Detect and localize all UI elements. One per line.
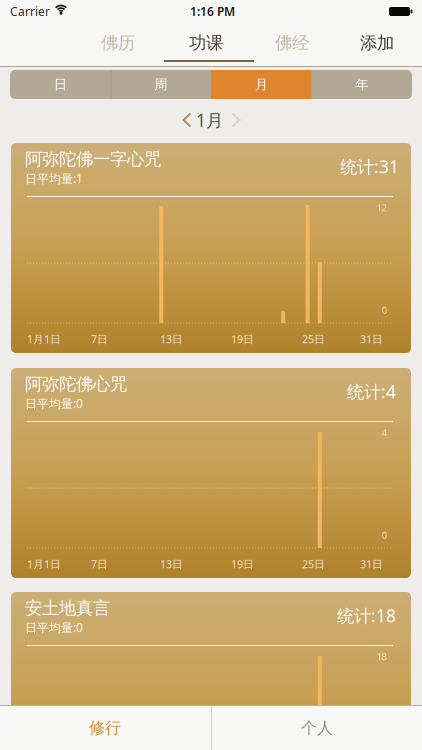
button[interactable]: 阿弥陀佛心咒 xyxy=(11,368,411,578)
staticText: 1月1日 xyxy=(27,332,61,346)
staticText: 19日 xyxy=(231,332,254,346)
button[interactable]: 修行 xyxy=(0,706,210,750)
staticText: 功课 xyxy=(189,32,223,54)
staticText: 安土地真言 xyxy=(25,597,110,619)
staticText: 阿弥陀佛心咒 xyxy=(25,373,127,395)
staticText: 18 xyxy=(376,650,386,663)
staticText: 13日 xyxy=(160,332,183,346)
button[interactable]: 阿弥陀佛一字心咒 xyxy=(11,143,411,353)
staticText: 个人 xyxy=(301,718,333,738)
button[interactable]: Previous month xyxy=(175,105,198,134)
staticText: 修行 xyxy=(89,718,121,738)
button[interactable]: Next month xyxy=(224,105,247,134)
staticText: 7日 xyxy=(91,557,108,571)
button[interactable]: 佛经 xyxy=(248,25,336,61)
staticText: 0 xyxy=(382,304,387,316)
button[interactable]: 添加 xyxy=(333,25,421,61)
staticText: 日平均量:0 xyxy=(25,395,83,411)
staticText: 31日 xyxy=(360,332,383,346)
staticText: 佛经 xyxy=(275,32,309,54)
button[interactable]: 周 xyxy=(110,70,211,99)
staticText: 25日 xyxy=(302,332,325,346)
button[interactable]: 佛历 xyxy=(74,25,162,61)
staticText: 阿弥陀佛一字心咒 xyxy=(25,148,161,170)
staticText: 7日 xyxy=(91,332,108,346)
staticText: 25日 xyxy=(302,557,325,571)
button[interactable]: 月 xyxy=(211,70,311,99)
staticText: Carrier xyxy=(10,3,50,19)
button[interactable]: 年 xyxy=(311,70,412,99)
staticText: 统计:31 xyxy=(340,155,399,178)
staticText: 日 xyxy=(54,76,67,93)
staticText: 1月 xyxy=(196,108,223,131)
button[interactable]: 安土地真言 xyxy=(11,592,411,750)
button[interactable]: 日 xyxy=(10,70,110,99)
staticText: 添加 xyxy=(360,32,394,54)
staticText: 统计:4 xyxy=(347,380,396,403)
staticText: 周 xyxy=(154,76,167,93)
button[interactable]: 功课 xyxy=(162,25,250,61)
staticText: 1月1日 xyxy=(27,557,61,571)
staticText: 0 xyxy=(382,529,387,541)
staticText: 19日 xyxy=(231,557,254,571)
staticText: 日平均量:1 xyxy=(25,170,83,186)
staticText: 31日 xyxy=(360,557,383,571)
staticText: 日平均量:0 xyxy=(25,619,83,635)
staticText: 1:16 PM xyxy=(190,3,235,19)
staticText: 12 xyxy=(376,201,386,214)
staticText: 佛历 xyxy=(101,32,135,54)
button[interactable]: 个人 xyxy=(212,706,422,750)
staticText: 月 xyxy=(255,76,268,93)
staticText: 年 xyxy=(355,76,368,93)
staticText: 13日 xyxy=(160,557,183,571)
staticText: 统计:18 xyxy=(337,604,396,627)
staticText: 4 xyxy=(382,426,387,439)
